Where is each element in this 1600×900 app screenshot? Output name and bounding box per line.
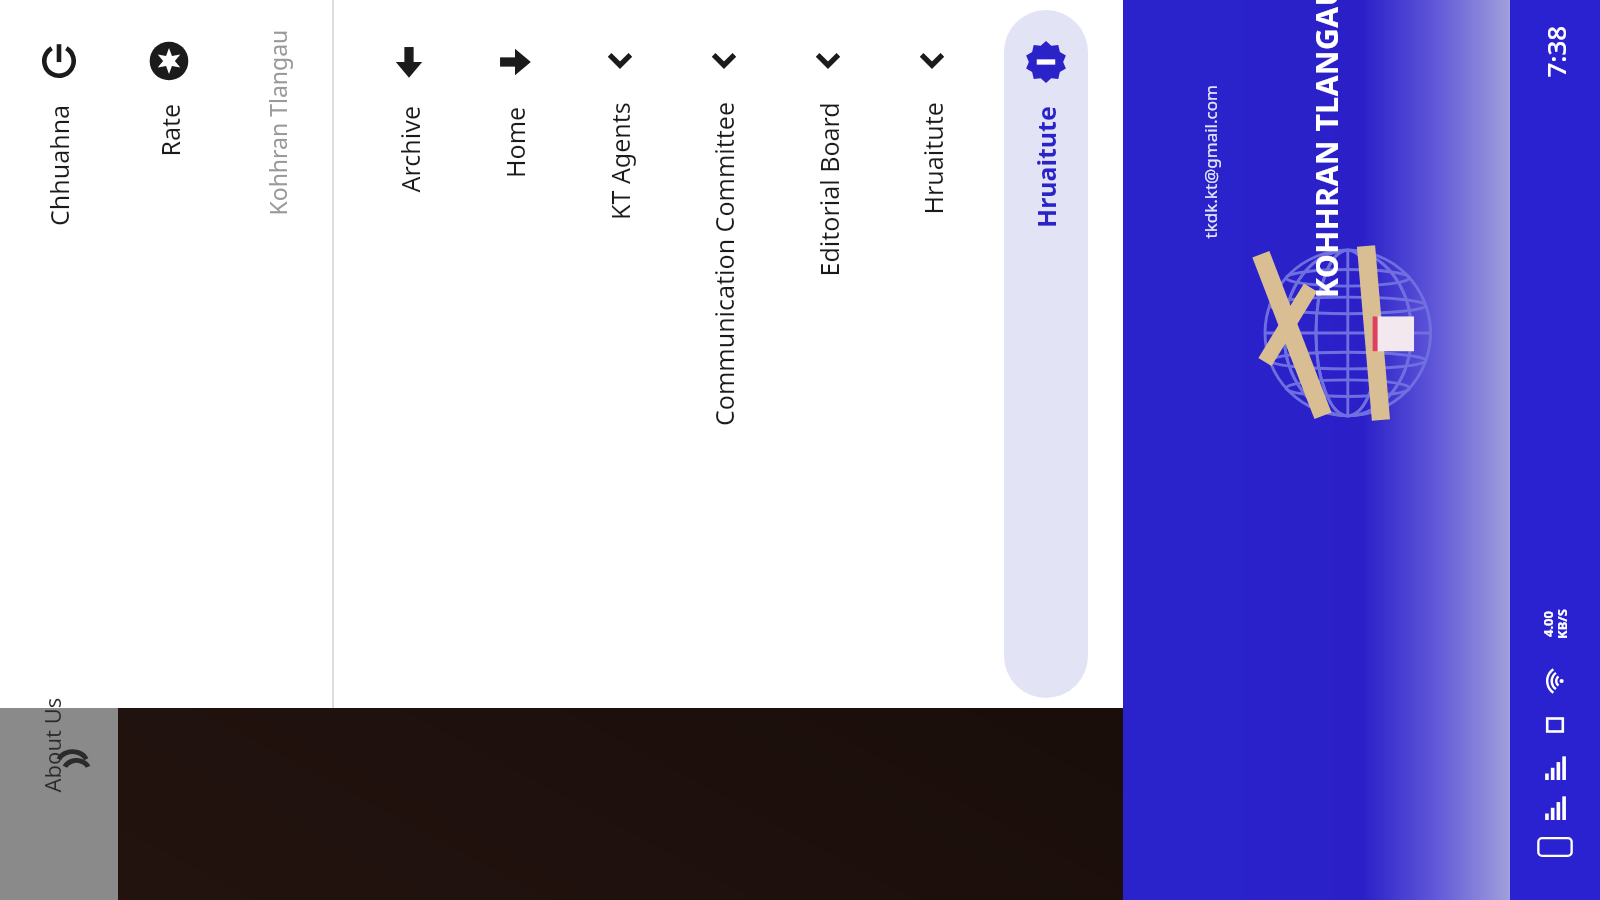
staticText: Chhuahna — [42, 104, 76, 226]
staticText: Communication Committee — [707, 102, 741, 426]
staticText: Editorial Board — [811, 101, 845, 276]
staticText: tkdk.kt@gmail.com — [1198, 84, 1221, 238]
staticText: KOHHRAN TLANGAU — [1306, 0, 1347, 298]
button[interactable]: About Us — [0, 708, 118, 900]
button[interactable]: KT Agents — [572, 10, 668, 698]
button[interactable]: Rate — [122, 10, 216, 698]
staticText: Archive — [392, 105, 426, 192]
staticText: AU — [600, 220, 731, 355]
staticText: Hruaitute — [1029, 106, 1063, 228]
staticText: 7:38 — [1537, 25, 1572, 77]
staticText: Home — [498, 106, 532, 178]
staticText: 4.00 KB/S — [1539, 609, 1571, 639]
button[interactable]: Communication Committee — [676, 10, 772, 698]
staticText: Rate — [152, 103, 186, 156]
button[interactable]: Archive — [360, 10, 458, 698]
staticText: KT Agents — [603, 102, 637, 220]
staticText: Hruaitute — [915, 101, 949, 214]
button[interactable]: Hruaitute — [884, 10, 980, 698]
button[interactable]: Hruaitute — [1004, 10, 1088, 698]
staticText: About Us — [36, 697, 66, 792]
button[interactable]: More options — [1432, 806, 1462, 824]
button[interactable]: Chhuahna — [4, 10, 114, 698]
button[interactable]: Home — [466, 10, 564, 698]
button[interactable]: Editorial Board — [780, 10, 876, 698]
staticText: Kohhran Tlangau — [261, 29, 292, 215]
